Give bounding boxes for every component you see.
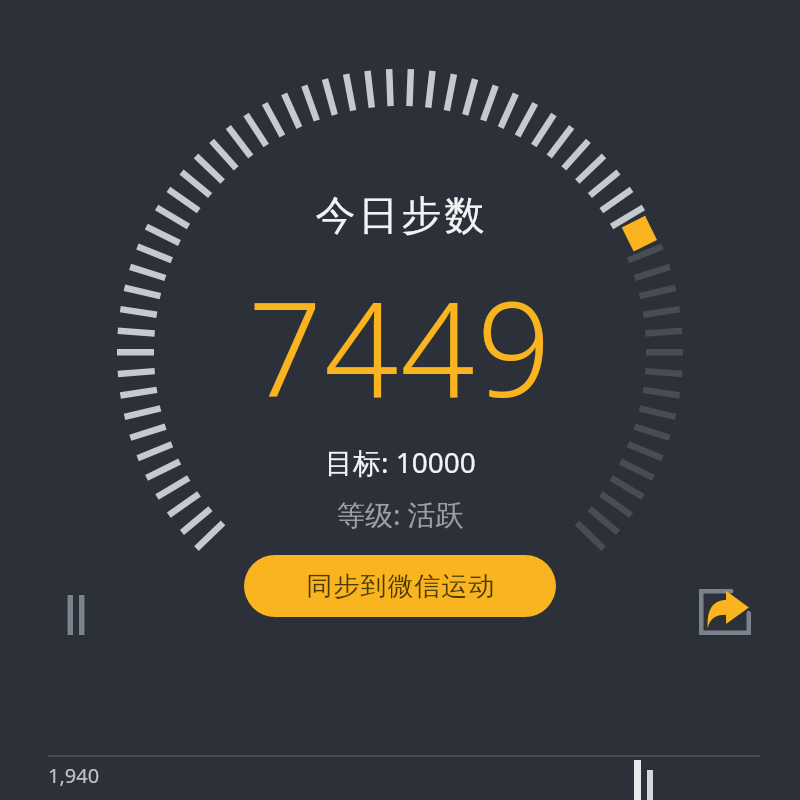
button[interactable]: 同步到微信运动 — [244, 555, 556, 617]
staticText: 今日步数 — [314, 190, 486, 240]
button[interactable]: Pause — [48, 586, 104, 644]
staticText: 目标: 10000 — [325, 443, 476, 481]
staticText: 同步到微信运动 — [306, 570, 495, 603]
staticText: 1,940 — [48, 762, 100, 789]
button[interactable]: Share — [692, 580, 758, 644]
staticText: 7449 — [248, 258, 553, 435]
staticText: 等级: 活跃 — [337, 495, 464, 533]
